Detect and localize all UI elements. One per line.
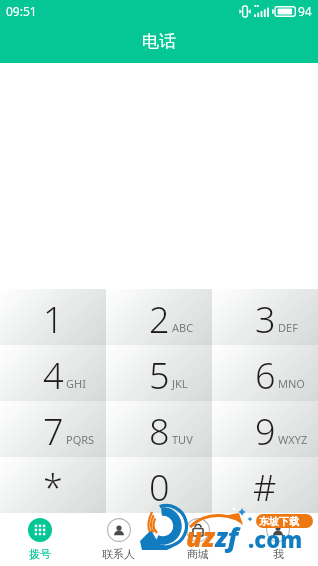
staticText: * (43, 463, 63, 512)
staticText: 7 (43, 407, 64, 456)
staticText: 09:51 (6, 3, 37, 19)
other: Dialer (28, 518, 52, 542)
staticText: MNO (278, 376, 305, 391)
staticText: PQRS (66, 432, 95, 447)
button[interactable]: 7 (0, 401, 106, 457)
button[interactable]: Me (238, 513, 318, 566)
staticText: 我 (273, 547, 284, 561)
staticText: 0 (149, 463, 170, 512)
button[interactable]: 1 (0, 289, 106, 345)
staticText: 4 (43, 351, 64, 400)
button[interactable]: Dialer (0, 513, 79, 566)
button[interactable]: * (0, 457, 106, 513)
staticText: WXYZ (278, 432, 308, 447)
staticText: 1 (43, 295, 64, 344)
button[interactable]: 3 (212, 289, 318, 345)
button[interactable]: 8 (106, 401, 212, 457)
staticText: 东坡下载 (259, 515, 299, 528)
button[interactable]: 4 (0, 345, 106, 401)
staticText: .com (248, 524, 303, 554)
staticText: 8 (149, 407, 170, 456)
button[interactable]: # (212, 457, 318, 513)
staticText: DEF (278, 320, 298, 335)
staticText: # (253, 463, 277, 512)
button[interactable]: 9 (212, 401, 318, 457)
staticText: ABC (172, 320, 194, 335)
staticText: TUV (172, 432, 193, 447)
button[interactable]: 6 (212, 345, 318, 401)
staticText: 6 (255, 351, 276, 400)
staticText: 商城 (187, 547, 209, 561)
other: Store (186, 518, 210, 542)
button[interactable]: 2 (106, 289, 212, 345)
staticText: 9 (255, 407, 276, 456)
staticText: 3 (255, 295, 276, 344)
button[interactable]: Store (158, 513, 238, 566)
other: Contacts (107, 518, 131, 542)
staticText: uz (186, 519, 215, 554)
staticText: 94 (298, 3, 312, 19)
staticText: zf (215, 519, 239, 554)
staticText: 2 (149, 295, 170, 344)
staticText: 拨号 (29, 547, 51, 561)
staticText: 联系人 (102, 547, 135, 561)
other: Me (266, 518, 290, 542)
staticText: GHI (66, 376, 86, 391)
staticText: 电话 (142, 31, 176, 52)
button[interactable]: Contacts (79, 513, 158, 566)
button[interactable]: 0 (106, 457, 212, 513)
button[interactable]: 5 (106, 345, 212, 401)
staticText: JKL (172, 376, 188, 391)
staticText: 5 (149, 351, 170, 400)
